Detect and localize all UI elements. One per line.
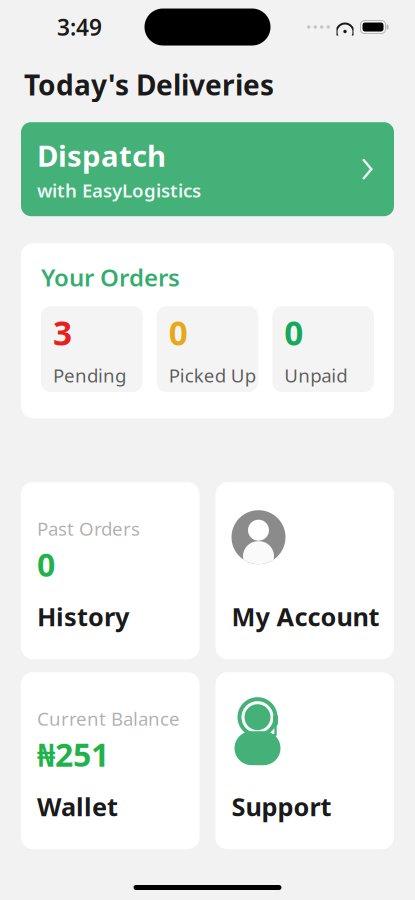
button[interactable]: 0 xyxy=(272,306,374,392)
staticText: My Account xyxy=(231,599,379,633)
button[interactable]: 3 xyxy=(41,306,143,392)
button[interactable]: 0 xyxy=(157,306,258,392)
staticText: 3:49 xyxy=(57,12,102,42)
staticText: Dispatch xyxy=(37,136,166,175)
staticText: Past Orders xyxy=(37,516,140,541)
staticText: Unpaid xyxy=(284,363,347,388)
staticText: Today's Deliveries xyxy=(24,66,274,103)
staticText: Support xyxy=(231,789,331,823)
staticText: Pending xyxy=(53,363,126,388)
button[interactable]: My Account xyxy=(215,482,394,659)
staticText: 0 xyxy=(37,543,55,585)
button[interactable]: Past Orders xyxy=(21,482,199,659)
button[interactable]: Dispatch xyxy=(21,122,394,216)
staticText: 3 xyxy=(53,310,72,355)
staticText: Current Balance xyxy=(37,706,180,731)
staticText: Your Orders xyxy=(41,261,180,293)
button[interactable]: Current Balance xyxy=(21,672,199,849)
staticText: Wallet xyxy=(37,789,118,823)
staticText: with EasyLogistics xyxy=(37,178,201,203)
staticText: ₦251 xyxy=(37,733,109,775)
staticText: 0 xyxy=(169,310,188,355)
staticText: History xyxy=(37,599,129,633)
staticText: Picked Up xyxy=(169,363,256,388)
button[interactable]: Support xyxy=(215,672,394,849)
staticText: 0 xyxy=(284,310,303,355)
